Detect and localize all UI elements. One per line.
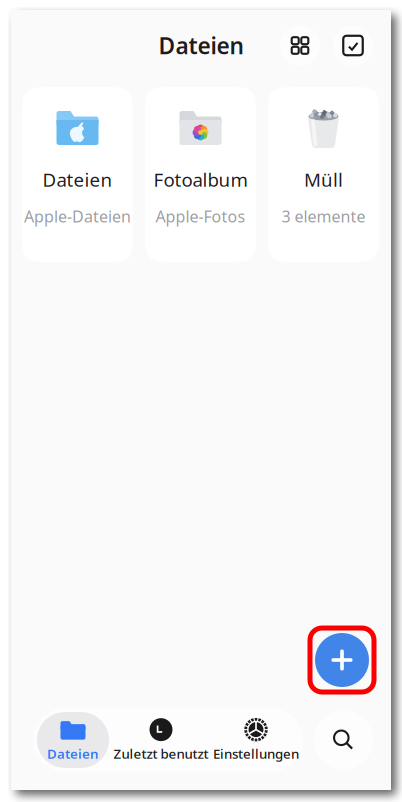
staticText: Fotoalbum — [153, 167, 247, 192]
staticText: Dateien — [158, 30, 243, 60]
staticText: Apple-Dateien — [24, 206, 131, 227]
button[interactable]: Search — [314, 710, 373, 769]
staticText: 3 elemente — [281, 206, 365, 227]
staticText: Dateien — [42, 167, 112, 192]
button[interactable]: Dateien — [22, 87, 133, 262]
staticText: Müll — [304, 167, 343, 192]
button[interactable]: Add — [310, 628, 374, 692]
staticText: Apple-Fotos — [155, 206, 245, 227]
button[interactable]: Müll — [268, 87, 379, 262]
staticText: Einstellungen — [213, 745, 299, 762]
button[interactable]: Select items — [333, 25, 373, 65]
button[interactable]: Grid view — [280, 25, 320, 65]
button[interactable]: Einstellungen — [213, 712, 299, 768]
staticText: Zuletzt benutzt — [113, 745, 208, 762]
button[interactable]: Fotoalbum — [145, 87, 256, 262]
button[interactable]: Dateien — [37, 712, 109, 768]
staticText: Dateien — [47, 745, 99, 762]
button[interactable]: Zuletzt benutzt — [113, 712, 208, 768]
